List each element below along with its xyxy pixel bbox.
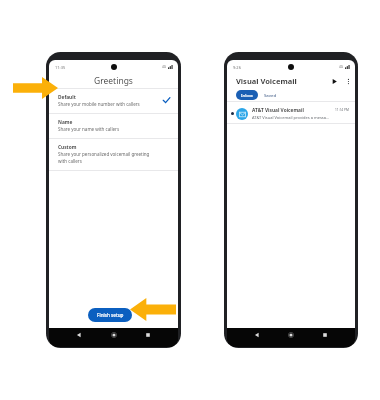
staticText: Share your mobile number with callers: [58, 101, 153, 107]
staticText: Custom: [58, 144, 77, 151]
button[interactable]: More options: [344, 77, 353, 86]
staticText: Greetings: [94, 75, 133, 87]
button[interactable]: Custom: [49, 139, 178, 170]
staticText: 4G: [339, 65, 344, 69]
button[interactable]: Finish setup: [88, 308, 132, 322]
button[interactable]: AT&T Visual Voicemail: [227, 102, 355, 123]
button[interactable]: Home: [110, 331, 118, 339]
button[interactable]: Home: [287, 331, 295, 339]
staticText: Finish setup: [97, 312, 124, 318]
button[interactable]: Play all: [330, 77, 339, 86]
button[interactable]: Back: [253, 331, 261, 339]
staticText: Inbox: [241, 92, 253, 98]
button[interactable]: Inbox: [236, 90, 258, 100]
button[interactable]: Default: [49, 89, 178, 113]
staticText: Share your name with callers: [58, 126, 153, 132]
staticText: 9:26: [233, 65, 241, 70]
staticText: Share your personalized voicemail greeti…: [58, 151, 153, 164]
staticText: Visual Voicemail: [236, 76, 297, 86]
staticText: AT&T Visual Voicemail provides a messa..…: [252, 115, 330, 120]
button[interactable]: Recent apps: [144, 331, 152, 339]
staticText: Saved: [264, 92, 277, 98]
button[interactable]: Back: [75, 331, 83, 339]
button[interactable]: Saved: [261, 90, 280, 100]
button[interactable]: Recent apps: [321, 331, 329, 339]
staticText: AT&T Visual Voicemail: [252, 107, 304, 114]
staticText: 11:35: [55, 65, 66, 70]
staticText: 4G: [162, 65, 167, 69]
staticText: 11:14 PM: [335, 108, 349, 112]
button[interactable]: Name: [49, 114, 178, 138]
staticText: Name: [58, 119, 73, 126]
staticText: Default: [58, 94, 76, 101]
